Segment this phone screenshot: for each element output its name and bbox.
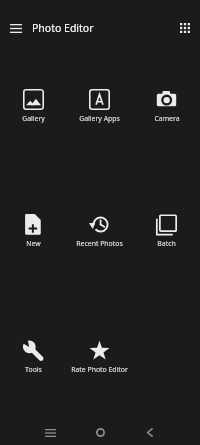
staticText: Rate Photo Editor: [71, 365, 128, 374]
button[interactable]: Home: [75, 420, 125, 445]
staticText: Camera: [154, 114, 180, 123]
button[interactable]: New: [0, 210, 66, 252]
staticText: Photo Editor: [32, 21, 94, 35]
staticText: New: [26, 239, 41, 248]
button[interactable]: Recent Photos: [66, 210, 133, 252]
staticText: Batch: [157, 239, 176, 248]
button[interactable]: Tools: [0, 336, 66, 378]
button[interactable]: Recent apps: [25, 420, 75, 445]
staticText: Gallery Apps: [79, 114, 120, 123]
button[interactable]: Rate Photo Editor: [66, 336, 133, 378]
button[interactable]: Gallery Apps: [66, 85, 133, 127]
button[interactable]: Back: [125, 420, 175, 445]
button[interactable]: Gallery: [0, 85, 66, 127]
staticText: Gallery: [22, 114, 45, 123]
button[interactable]: Navigation menu: [4, 16, 28, 40]
button[interactable]: Camera: [133, 85, 200, 127]
staticText: Tools: [25, 365, 42, 374]
button[interactable]: Apps grid: [173, 16, 197, 40]
staticText: Recent Photos: [76, 239, 123, 248]
button[interactable]: Batch: [133, 210, 200, 252]
